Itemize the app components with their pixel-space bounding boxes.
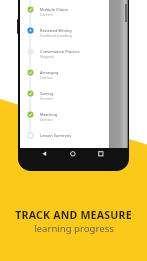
staticText: Skipped [40, 54, 54, 59]
staticText: Sorting [40, 91, 54, 96]
staticText: Lesson Summary [40, 133, 72, 138]
staticText: Reviewed Writing [40, 28, 72, 33]
button[interactable]: Conversation Practice [20, 41, 109, 62]
staticText: Matching [40, 112, 58, 117]
staticText: Correct [40, 96, 53, 101]
staticText: Feedback pending [40, 33, 72, 38]
button[interactable]: Lesson Summary [20, 125, 109, 146]
button[interactable]: Multiple Choice [20, 0, 109, 20]
button[interactable]: Sorting [20, 83, 109, 104]
staticText: learning progress [34, 222, 114, 235]
staticText: Conversation Practice [40, 49, 80, 54]
staticText: Correct [40, 117, 53, 122]
button[interactable]: Arranging [20, 62, 109, 83]
staticText: Correct [40, 12, 53, 17]
staticText: Arranging [40, 70, 59, 75]
staticText: Multiple Choice [40, 7, 69, 12]
staticText: Correct [40, 75, 53, 80]
staticText: TRACK AND MEASURE [15, 208, 132, 222]
button[interactable]: Reviewed Writing [20, 20, 109, 41]
button[interactable]: Matching [20, 104, 109, 125]
